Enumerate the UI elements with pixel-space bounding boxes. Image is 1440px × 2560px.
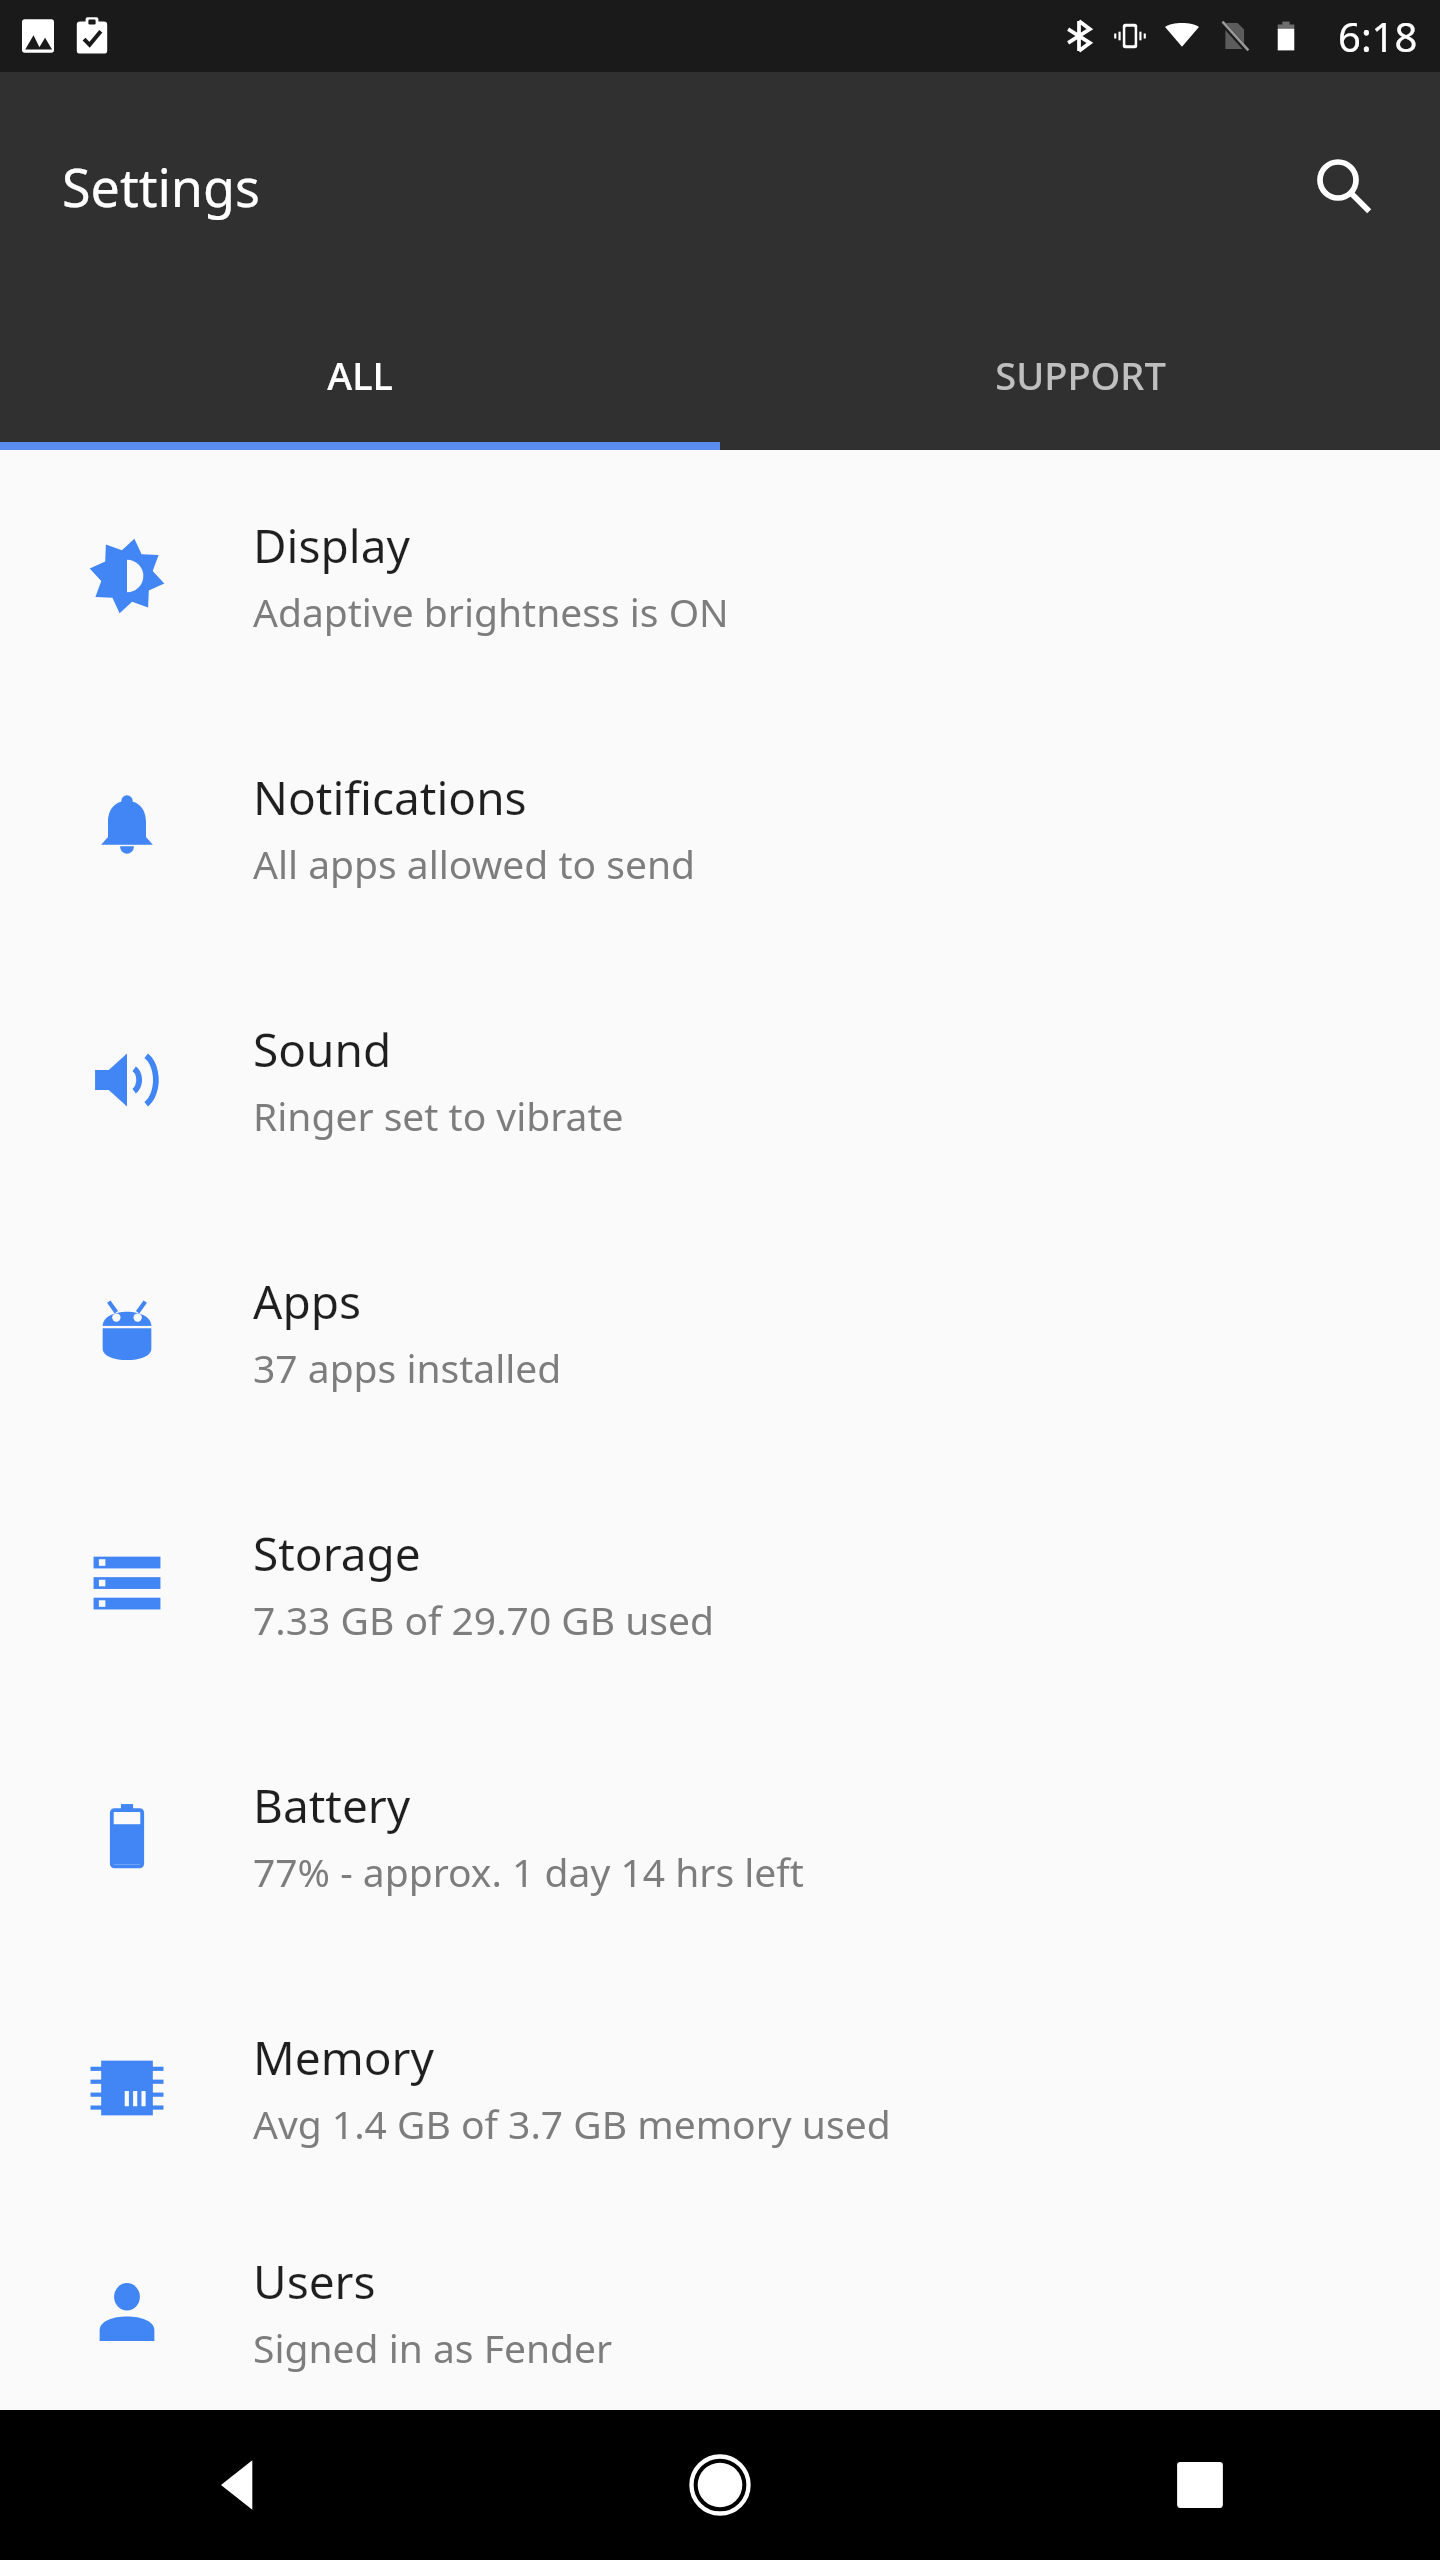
staticText: Adaptive brightness is ON <box>253 585 729 638</box>
button[interactable]: SUPPORT <box>720 300 1440 450</box>
staticText: SUPPORT <box>995 349 1166 401</box>
staticText: Ringer set to vibrate <box>253 1089 624 1142</box>
button[interactable]: Sound <box>0 954 1440 1206</box>
staticText: Settings <box>62 151 260 222</box>
staticText: Users <box>253 2250 376 2313</box>
staticText: Storage <box>253 1522 421 1585</box>
button[interactable]: ALL <box>0 300 720 450</box>
button[interactable]: Battery <box>0 1710 1440 1962</box>
staticText: ALL <box>327 349 393 401</box>
button[interactable]: Search <box>1296 138 1392 234</box>
staticText: 6:18 <box>1338 9 1418 63</box>
button[interactable]: Recents <box>960 2410 1440 2560</box>
staticText: 37 apps installed <box>253 1341 562 1394</box>
button[interactable]: Memory <box>0 1962 1440 2214</box>
staticText: 7.33 GB of 29.70 GB used <box>253 1593 715 1646</box>
button[interactable]: Home <box>480 2410 960 2560</box>
button[interactable]: Storage <box>0 1458 1440 1710</box>
staticText: All apps allowed to send <box>253 837 696 890</box>
button[interactable]: Display <box>0 450 1440 702</box>
button[interactable]: Users <box>0 2214 1440 2410</box>
staticText: Battery <box>253 1774 411 1837</box>
staticText: Sound <box>253 1018 392 1081</box>
staticText: Signed in as Fender <box>253 2321 613 2374</box>
staticText: 77% - approx. 1 day 14 hrs left <box>253 1845 804 1898</box>
staticText: Apps <box>253 1270 362 1333</box>
staticText: Avg 1.4 GB of 3.7 GB memory used <box>253 2097 891 2150</box>
staticText: Display <box>253 514 410 577</box>
staticText: Notifications <box>253 766 527 829</box>
staticText: Memory <box>253 2026 434 2089</box>
button[interactable]: Back <box>0 2410 480 2560</box>
button[interactable]: Notifications <box>0 702 1440 954</box>
button[interactable]: Apps <box>0 1206 1440 1458</box>
